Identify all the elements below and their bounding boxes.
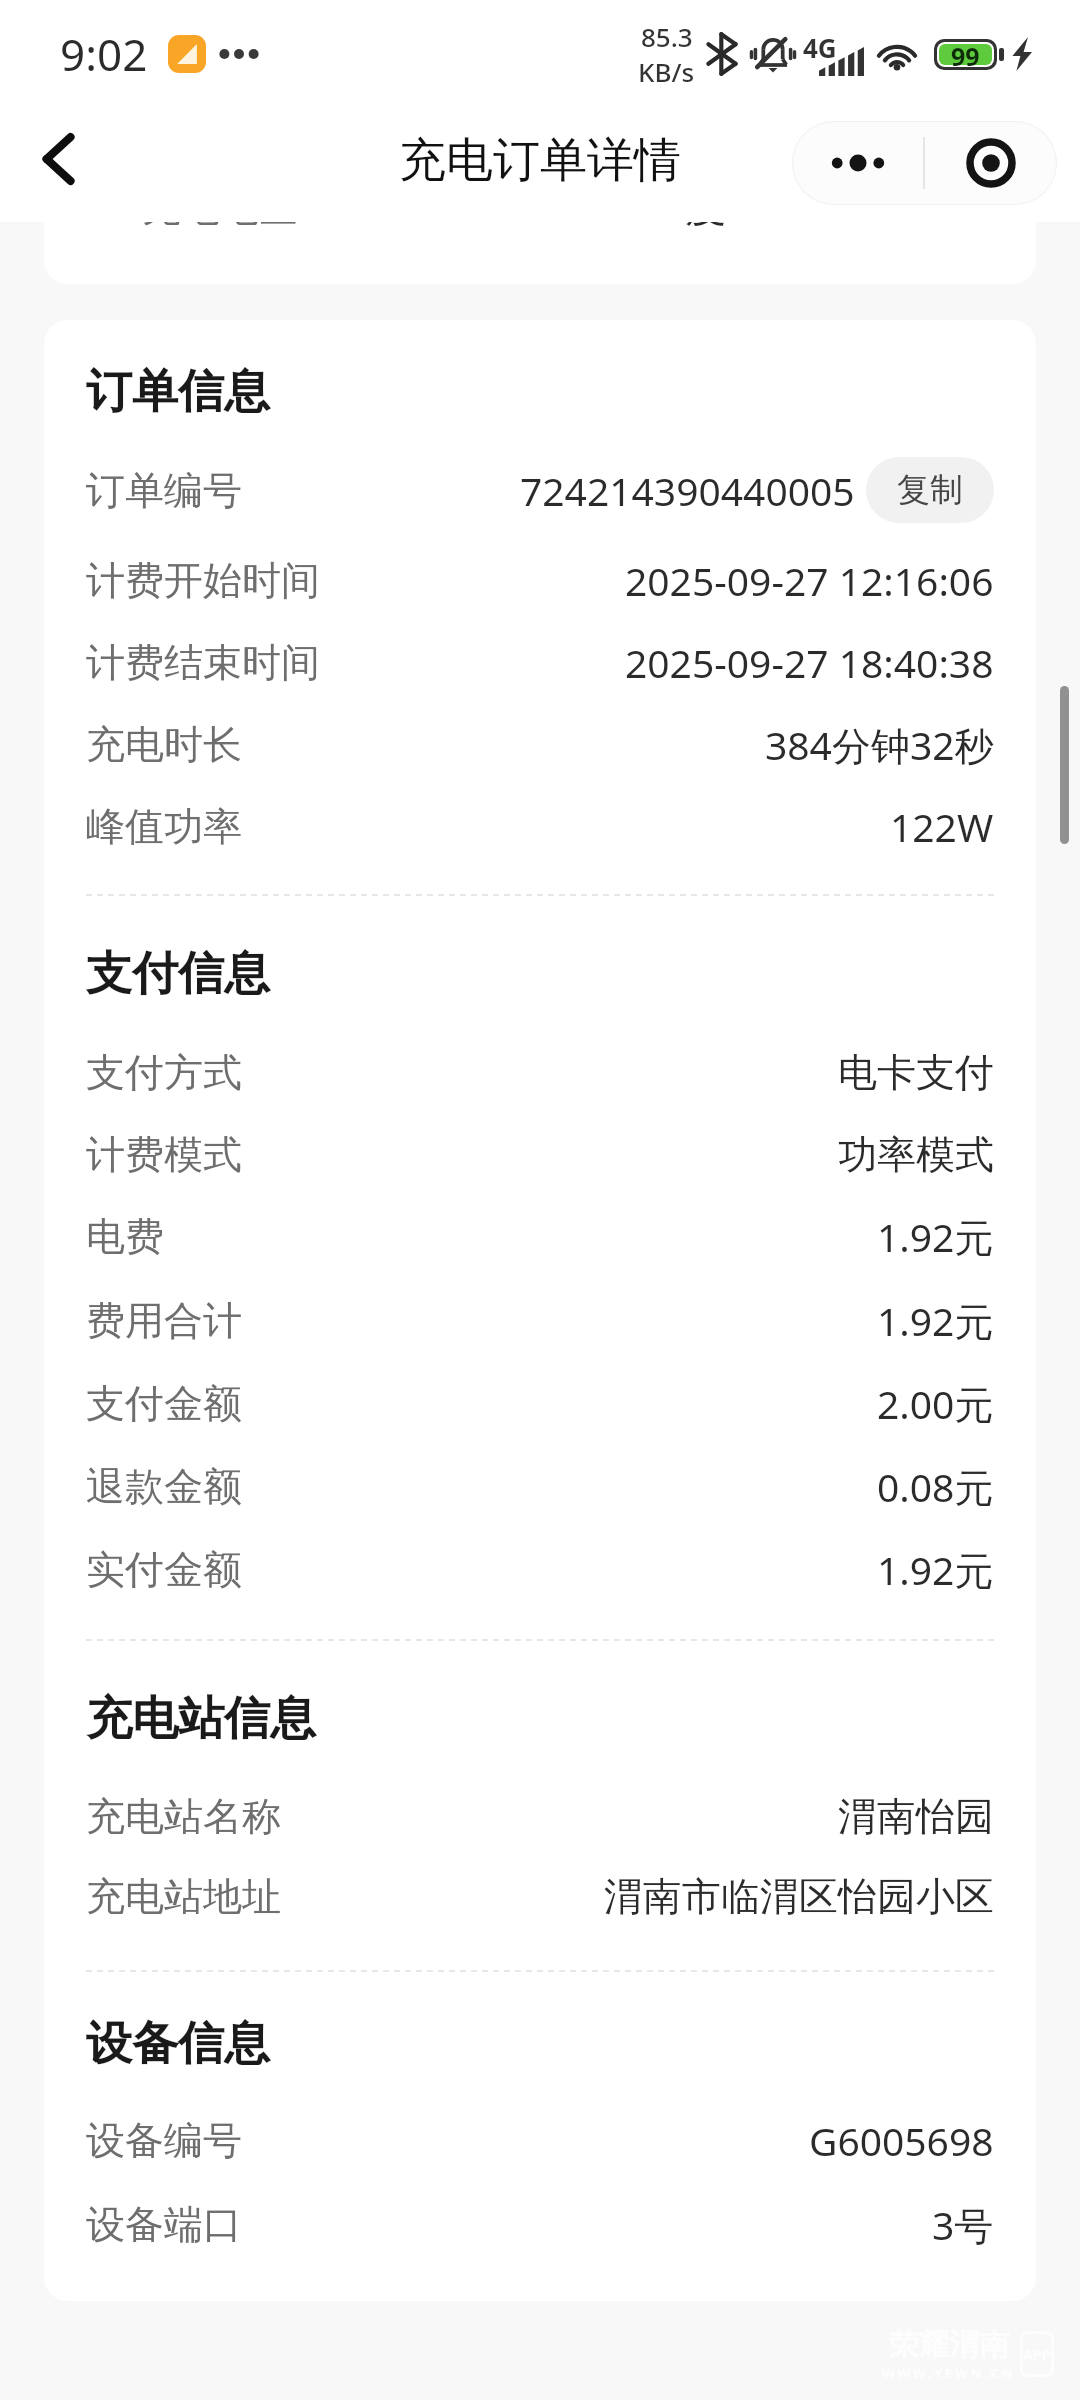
staticText: 渭南市临渭区怡园小区 bbox=[604, 1872, 994, 1921]
staticText: 计费开始时间 bbox=[86, 556, 320, 605]
staticText: 4G bbox=[803, 30, 837, 65]
staticText: 2025-09-27 12:16:06 bbox=[625, 554, 994, 607]
button[interactable]: 电费 bbox=[86, 1195, 994, 1277]
staticText: 充电时长 bbox=[86, 720, 242, 769]
staticText: KB/s bbox=[638, 54, 695, 89]
staticText: 724214390440005 bbox=[520, 464, 855, 517]
staticText: 支付金额 bbox=[86, 1379, 242, 1428]
button[interactable]: 计费模式 bbox=[86, 1113, 994, 1195]
button[interactable]: 复制 bbox=[866, 457, 994, 523]
staticText: 支付信息 bbox=[86, 945, 270, 1003]
staticText: 384分钟32秒 bbox=[765, 718, 994, 771]
staticText: 122W bbox=[890, 800, 994, 853]
staticText: 设备编号 bbox=[86, 2116, 242, 2165]
staticText: 支付方式 bbox=[86, 1048, 242, 1097]
staticText: 0.32度 bbox=[604, 177, 727, 233]
button[interactable]: 设备编号 bbox=[86, 2099, 994, 2181]
staticText: 充电站信息 bbox=[86, 1690, 316, 1748]
staticText: 充电站名称 bbox=[86, 1792, 281, 1841]
staticText: 0.08元 bbox=[877, 1460, 994, 1513]
staticText: 订单编号 bbox=[86, 466, 242, 515]
staticText: 电费 bbox=[86, 1212, 164, 1261]
staticText: 电卡支付 bbox=[838, 1048, 994, 1097]
button[interactable]: 计费结束时间 bbox=[86, 621, 994, 703]
staticText: 设备端口 bbox=[86, 2200, 242, 2249]
button[interactable]: 计费开始时间 bbox=[86, 539, 994, 621]
staticText: 2025-09-27 18:40:38 bbox=[625, 636, 994, 689]
staticText: 1.92元 bbox=[877, 1210, 994, 1263]
staticText: 充电电量 bbox=[142, 183, 298, 232]
button[interactable]: Close mini program bbox=[925, 122, 1056, 204]
staticText: 设备信息 bbox=[86, 2015, 270, 2073]
staticText: 实付金额 bbox=[86, 1545, 242, 1594]
button[interactable]: 充电时长 bbox=[86, 703, 994, 785]
staticText: 充电订单详情 bbox=[399, 131, 681, 190]
staticText: 复制 bbox=[897, 469, 963, 511]
staticText: 2.00元 bbox=[877, 1377, 994, 1430]
staticText: 85.3 bbox=[641, 19, 693, 54]
button[interactable]: 订单编号 bbox=[86, 449, 994, 531]
button[interactable]: 退款金额 bbox=[86, 1445, 994, 1527]
staticText: 计费结束时间 bbox=[86, 638, 320, 687]
button[interactable]: More options bbox=[793, 122, 923, 204]
button[interactable]: 支付方式 bbox=[86, 1031, 994, 1113]
staticText: 退款金额 bbox=[86, 1462, 242, 1511]
button[interactable]: 设备端口 bbox=[86, 2183, 994, 2265]
staticText: 峰值功率 bbox=[86, 802, 242, 851]
staticText: 计费模式 bbox=[86, 1130, 242, 1179]
staticText: 订单信息 bbox=[86, 363, 270, 421]
staticText: 9:02 bbox=[60, 24, 148, 84]
button[interactable]: 充电站地址 bbox=[86, 1855, 994, 1937]
button[interactable]: 费用合计 bbox=[86, 1279, 994, 1361]
staticText: 1.92元 bbox=[877, 1294, 994, 1347]
staticText: 3号 bbox=[932, 2198, 994, 2251]
staticText: 渭南怡园 bbox=[838, 1792, 994, 1841]
staticText: 充电站地址 bbox=[86, 1872, 281, 1921]
staticText: 99 bbox=[951, 39, 980, 70]
button[interactable]: 峰值功率 bbox=[86, 785, 994, 867]
staticText: G6005698 bbox=[809, 2114, 994, 2167]
staticText: 1.92元 bbox=[877, 1543, 994, 1596]
button[interactable]: Back bbox=[18, 119, 98, 199]
staticText: 功率模式 bbox=[838, 1130, 994, 1179]
staticText: 费用合计 bbox=[86, 1296, 242, 1345]
button[interactable]: 实付金额 bbox=[86, 1528, 994, 1610]
button[interactable]: 支付金额 bbox=[86, 1362, 994, 1444]
button[interactable]: 充电站名称 bbox=[86, 1775, 994, 1857]
